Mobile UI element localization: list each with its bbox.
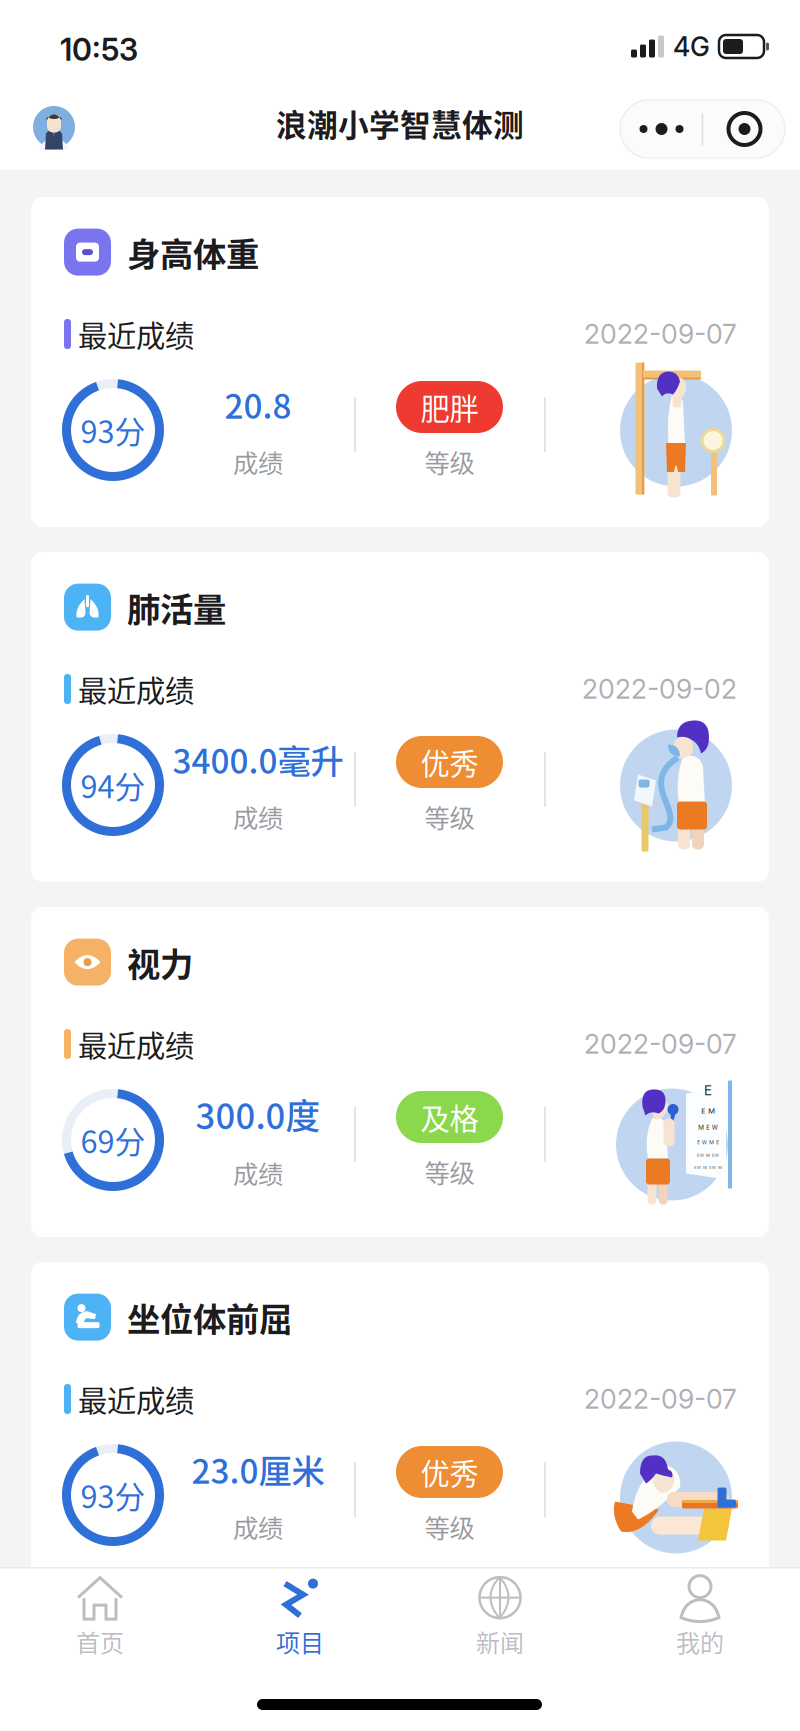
button[interactable]: 视力: [31, 907, 769, 1237]
staticText: 视力: [127, 938, 193, 986]
staticText: 优秀: [420, 741, 478, 783]
staticText: 2022-09-02: [582, 673, 737, 705]
staticText: 等级: [424, 798, 474, 835]
button[interactable]: News: [400, 1572, 600, 1662]
staticText: 及格: [420, 1096, 478, 1138]
staticText: 成绩: [233, 798, 283, 835]
button[interactable]: Mine: [600, 1572, 800, 1662]
staticText: ᴇ ᴡ ᴍ ᴇ: [697, 1137, 719, 1146]
staticText: 2022-09-07: [584, 318, 737, 350]
staticText: 等级: [424, 443, 474, 480]
staticText: 肺活量: [127, 583, 226, 631]
staticText: 20.8: [224, 380, 291, 428]
staticText: 93分: [80, 1473, 145, 1517]
staticText: 最近成绩: [78, 313, 194, 355]
button[interactable]: Home: [0, 1572, 200, 1662]
staticText: 肥胖: [420, 386, 478, 428]
staticText: 新闻: [476, 1624, 524, 1659]
staticText: 等级: [424, 1508, 474, 1545]
staticText: 93分: [80, 408, 145, 452]
staticText: ᴍ ᴇ ᴡ: [698, 1121, 718, 1132]
staticText: 项目: [276, 1624, 324, 1659]
staticText: 23.0厘米: [191, 1445, 324, 1493]
staticText: 最近成绩: [78, 1023, 194, 1065]
staticText: E: [704, 1082, 712, 1098]
staticText: ᴇ ᴡ ᴍ ᴇ ᴡ ᴍ: [694, 1163, 722, 1171]
staticText: 成绩: [233, 443, 283, 480]
staticText: 4G: [673, 30, 710, 63]
staticText: 我的: [676, 1624, 724, 1659]
staticText: 等级: [424, 1153, 474, 1190]
button[interactable]: 肺活量: [31, 552, 769, 882]
staticText: 最近成绩: [78, 668, 194, 710]
staticText: 首页: [76, 1624, 124, 1659]
staticText: 优秀: [420, 1451, 478, 1493]
staticText: 69分: [80, 1118, 145, 1162]
staticText: 最近成绩: [78, 1378, 194, 1420]
staticText: 2022-09-07: [584, 1383, 737, 1415]
staticText: 300.0度: [195, 1089, 320, 1139]
button[interactable]: 身高体重: [31, 197, 769, 527]
staticText: 浪潮小学智慧体测: [276, 101, 524, 145]
staticText: ᴇ ᴡ ᴍ ᴇ ᴡ: [697, 1151, 719, 1158]
staticText: 10:53: [60, 31, 138, 68]
staticText: 身高体重: [127, 228, 259, 276]
button[interactable]: 坐位体前屈: [31, 1262, 769, 1592]
button[interactable]: Projects: [200, 1572, 400, 1662]
staticText: 94分: [80, 763, 145, 807]
staticText: 坐位体前屈: [127, 1293, 292, 1341]
staticText: 成绩: [233, 1154, 283, 1191]
staticText: 2022-09-07: [584, 1028, 737, 1060]
button[interactable]: More options and close: [0, 0, 165, 58]
staticText: 3400.0毫升: [172, 735, 343, 783]
staticText: ᴇ ᴍ: [701, 1103, 715, 1116]
staticText: 成绩: [233, 1508, 283, 1545]
